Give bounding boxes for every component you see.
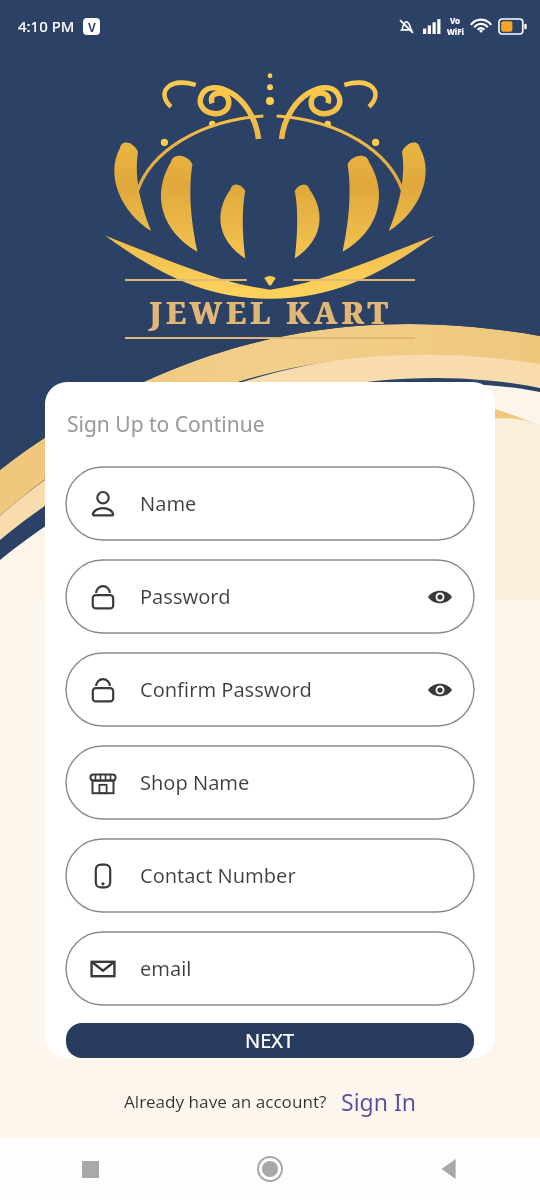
button[interactable]: Show password xyxy=(418,668,462,712)
button[interactable]: Show password xyxy=(418,575,462,619)
button[interactable] xyxy=(66,560,474,633)
button[interactable]: Back xyxy=(426,1145,474,1193)
staticText: JEWEL KART xyxy=(149,292,392,333)
staticText: Confirm Password xyxy=(140,676,312,703)
button[interactable] xyxy=(66,932,474,1005)
staticText: 4:10 PM xyxy=(18,16,75,36)
staticText: email xyxy=(140,955,192,982)
staticText: V xyxy=(88,19,96,35)
staticText: Name xyxy=(140,490,197,517)
staticText: Vo xyxy=(450,15,461,26)
button[interactable]: NEXT xyxy=(66,1023,474,1058)
button[interactable]: Home xyxy=(246,1145,294,1193)
button[interactable]: Recent apps xyxy=(66,1145,114,1193)
staticText: NEXT xyxy=(245,1027,295,1054)
staticText: Sign Up to Continue xyxy=(67,410,265,439)
button[interactable] xyxy=(66,746,474,819)
staticText: Password xyxy=(140,583,231,610)
staticText: Sign In xyxy=(341,1086,416,1117)
button[interactable] xyxy=(66,839,474,912)
staticText: WiFi xyxy=(447,26,464,37)
staticText: Contact Number xyxy=(140,862,296,889)
button[interactable]: Sign In xyxy=(341,1086,416,1117)
staticText: Shop Name xyxy=(140,769,250,796)
button[interactable] xyxy=(66,467,474,540)
staticText: Already have an account? xyxy=(124,1090,327,1113)
button[interactable] xyxy=(66,653,474,726)
